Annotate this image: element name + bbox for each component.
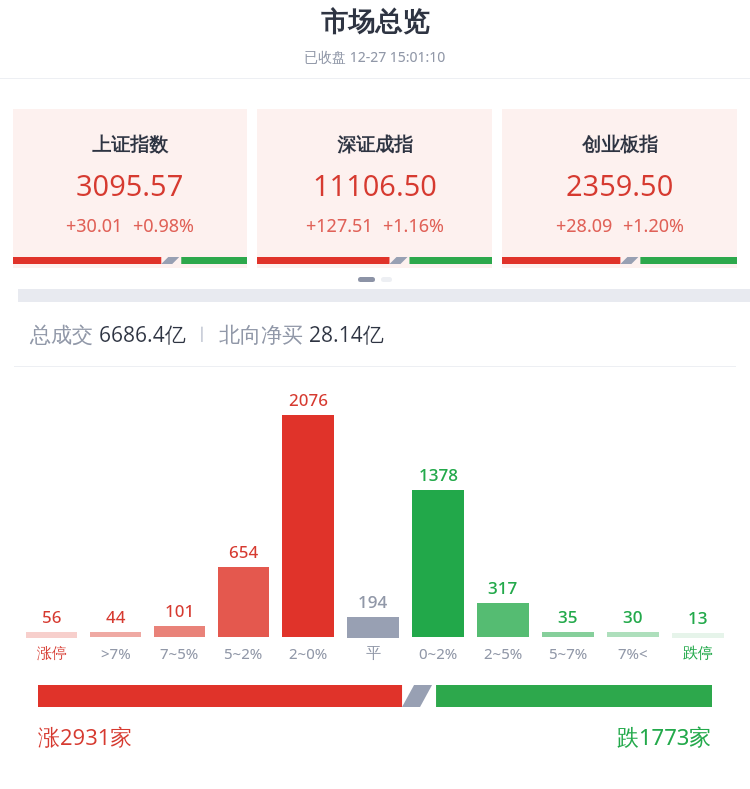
staticText: 56 <box>42 605 62 628</box>
button[interactable]: 194 <box>347 590 399 663</box>
staticText: +0.98% <box>133 213 194 238</box>
button[interactable]: 30 <box>607 605 659 663</box>
staticText: 5~7% <box>549 643 588 663</box>
staticText: 13 <box>688 606 708 629</box>
staticText: +127.51 <box>306 213 373 238</box>
staticText: 已收盘 12-27 15:01:10 <box>304 47 446 66</box>
button[interactable]: 13 <box>672 606 724 663</box>
staticText: 2~5% <box>484 643 523 663</box>
staticText: 5~2% <box>224 643 263 663</box>
staticText: 上证指数 <box>92 133 168 157</box>
staticText: 市场总览 <box>321 5 429 39</box>
staticText: 创业板指 <box>582 133 658 157</box>
staticText: 44 <box>106 605 126 628</box>
staticText: 194 <box>358 590 388 613</box>
staticText: 0~2% <box>419 643 458 663</box>
staticText: 317 <box>488 576 518 599</box>
staticText: 7~5% <box>160 643 199 663</box>
staticText: 6686.4亿 <box>99 320 186 349</box>
staticText: 2076 <box>289 388 328 411</box>
staticText: 跌停 <box>683 644 713 663</box>
staticText: 2~0% <box>289 643 328 663</box>
button[interactable]: 1378 <box>412 463 464 663</box>
button[interactable]: 涨跌比例 <box>38 685 712 707</box>
button[interactable]: 上证指数 <box>13 109 247 268</box>
button[interactable]: 深证成指 <box>257 109 492 268</box>
staticText: 深证成指 <box>337 133 413 157</box>
staticText: 跌1773家 <box>617 721 712 751</box>
staticText: 7%< <box>618 643 648 663</box>
staticText: 涨2931家 <box>38 721 133 751</box>
button[interactable]: 总成交 <box>0 302 750 366</box>
button[interactable]: 创业板指 <box>502 109 737 268</box>
staticText: 北向净买 <box>219 320 309 349</box>
button[interactable]: 44 <box>90 605 141 663</box>
staticText: 1378 <box>419 463 458 486</box>
staticText: 丨 <box>186 323 219 345</box>
staticText: 涨停 <box>37 644 67 663</box>
button[interactable]: 35 <box>542 605 594 663</box>
button[interactable]: 317 <box>477 576 529 663</box>
staticText: +1.20% <box>623 213 684 238</box>
button[interactable]: 654 <box>218 540 269 663</box>
staticText: 2359.50 <box>566 165 674 204</box>
staticText: 30 <box>623 605 643 628</box>
staticText: 28.14亿 <box>309 320 384 349</box>
staticText: 3095.57 <box>76 165 184 204</box>
staticText: +30.01 <box>66 213 123 238</box>
button[interactable]: 56 <box>26 605 77 663</box>
staticText: >7% <box>101 643 131 663</box>
staticText: 11106.50 <box>313 165 437 204</box>
button[interactable]: 101 <box>154 599 205 663</box>
staticText: 101 <box>165 599 195 622</box>
staticText: 总成交 <box>30 320 99 349</box>
staticText: +28.09 <box>556 213 613 238</box>
staticText: 平 <box>366 644 381 663</box>
staticText: 35 <box>558 605 578 628</box>
staticText: +1.16% <box>383 213 444 238</box>
staticText: 654 <box>229 540 259 563</box>
button[interactable]: 2076 <box>282 388 334 663</box>
